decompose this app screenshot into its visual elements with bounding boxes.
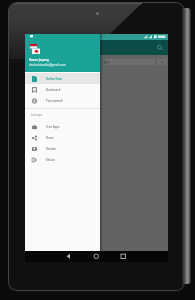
button[interactable]: Bookmark (25, 84, 100, 95)
button[interactable]: Free Apps (25, 121, 100, 132)
button[interactable]: Penerjemah (25, 95, 100, 106)
staticText: Bookmark (46, 88, 61, 92)
staticText: Review (46, 147, 56, 151)
button[interactable]: Keluar (25, 154, 100, 165)
staticText: Keluar (46, 158, 55, 162)
staticText: dev.bahtmailia@gmail.com (29, 63, 66, 67)
staticText: Lainnya (31, 113, 42, 117)
staticText: Kamus Jepang (29, 58, 49, 62)
button[interactable]: Share (25, 132, 100, 143)
staticText: Daftar Kata (46, 77, 62, 81)
staticText: Penerjemah (46, 99, 63, 103)
staticText: Share (46, 136, 54, 140)
staticText: Free Apps (46, 125, 60, 129)
button[interactable]: Daftar Kata (25, 73, 100, 84)
button[interactable]: Search (25, 40, 168, 55)
button[interactable]: Review (25, 143, 100, 154)
